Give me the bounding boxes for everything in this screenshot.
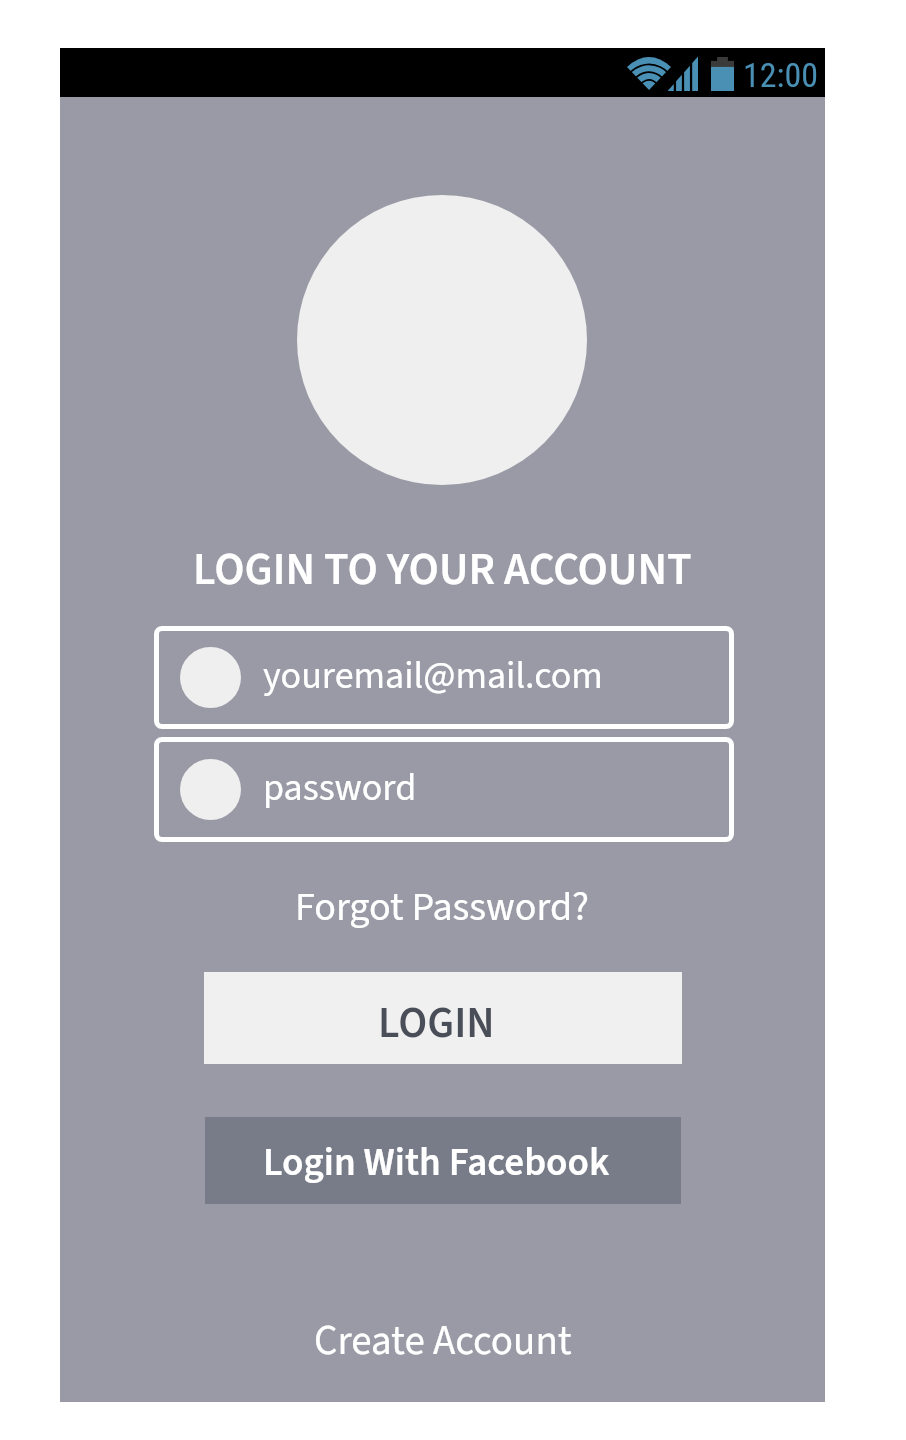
button[interactable]: Forgot Password?	[271, 871, 614, 944]
other: Wi-Fi signal	[627, 57, 671, 90]
other: Cellular signal strength	[668, 56, 698, 91]
other: Profile photo placeholder	[297, 195, 587, 485]
staticText: Forgot Password?	[295, 879, 590, 936]
staticText: 12:00	[743, 55, 819, 95]
button[interactable]: LOGIN	[204, 972, 682, 1064]
staticText: Login With Facebook	[263, 1135, 610, 1191]
staticText: Create Account	[314, 1312, 572, 1370]
staticText: LOGIN	[378, 993, 495, 1054]
button[interactable]: Create Account	[290, 1304, 596, 1378]
staticText: password	[263, 761, 417, 815]
other: Battery level	[711, 57, 734, 91]
button[interactable]: youremail@mail.com	[154, 626, 734, 729]
staticText: LOGIN TO YOUR ACCOUNT	[193, 538, 692, 602]
button[interactable]: Login With Facebook	[205, 1117, 681, 1204]
button[interactable]: password	[154, 737, 734, 842]
staticText: youremail@mail.com	[263, 649, 603, 703]
